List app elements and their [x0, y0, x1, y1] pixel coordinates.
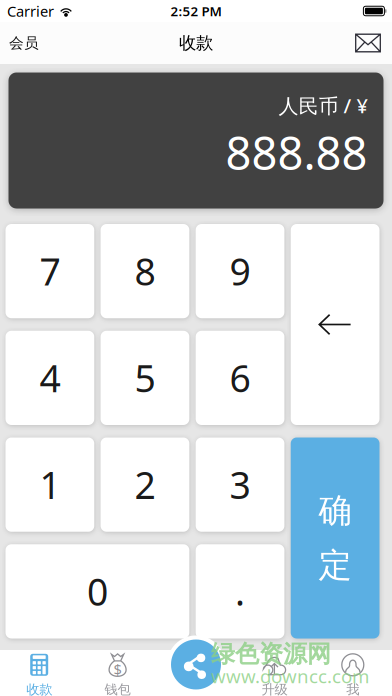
staticText: 我	[346, 681, 359, 696]
staticText: .	[235, 567, 245, 616]
button[interactable]: 确	[291, 437, 379, 638]
button[interactable]: Messages	[344, 22, 392, 64]
staticText: 3	[229, 460, 250, 509]
button[interactable]: 6	[196, 331, 284, 425]
button[interactable]: 0	[5, 544, 189, 638]
button[interactable]: 升级	[235, 650, 314, 696]
button[interactable]: 2	[101, 437, 189, 532]
staticText: 人民币 / ¥	[278, 92, 367, 119]
staticText: 2	[134, 460, 155, 509]
button[interactable]: 4	[5, 331, 94, 425]
staticText: 2:52 PM	[170, 2, 221, 20]
staticText: 9	[229, 246, 250, 296]
staticText: 5	[134, 353, 155, 403]
staticText: 8	[134, 246, 155, 296]
button[interactable]: 8	[101, 224, 189, 318]
staticText: 绿色资源网	[211, 639, 331, 669]
button[interactable]: 7	[5, 224, 94, 318]
button[interactable]: Backspace	[291, 224, 379, 425]
staticText: 收款	[179, 32, 213, 54]
staticText: $	[114, 660, 122, 679]
button[interactable]: 9	[196, 224, 284, 318]
button[interactable]: Share	[167, 635, 225, 693]
button[interactable]: 收款	[0, 650, 78, 696]
staticText: 钱包	[105, 681, 131, 696]
staticText: 升级	[261, 681, 287, 696]
staticText: 收款	[26, 681, 52, 696]
staticText: 888.88	[225, 122, 367, 183]
button[interactable]: 我	[314, 650, 392, 696]
staticText: Carrier	[7, 1, 54, 21]
staticText: 定	[319, 545, 352, 586]
staticText: www.downcc.com	[211, 664, 369, 688]
staticText: 6	[229, 353, 250, 403]
button[interactable]: .	[196, 544, 284, 638]
staticText: 4	[39, 353, 60, 403]
staticText: 0	[87, 567, 108, 616]
staticText: 确	[319, 490, 352, 531]
button[interactable]: 5	[101, 331, 189, 425]
button[interactable]: 3	[196, 437, 284, 532]
button[interactable]: 会员	[0, 22, 48, 64]
staticText: 1	[39, 460, 60, 509]
button[interactable]: $	[78, 650, 157, 696]
staticText: 7	[39, 246, 60, 296]
button[interactable]: 1	[5, 437, 94, 532]
staticText: 会员	[9, 34, 39, 52]
